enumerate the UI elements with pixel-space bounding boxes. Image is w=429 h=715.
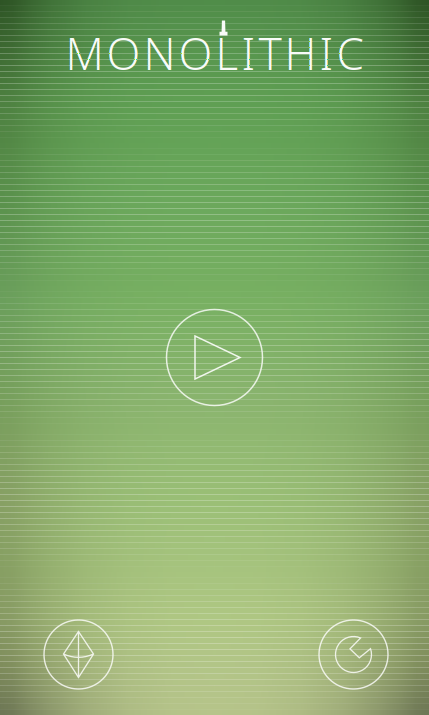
button[interactable]: Play [166,309,262,405]
button[interactable]: Crystal [44,620,113,689]
staticText: MONOLITHIC [65,24,363,82]
button[interactable]: Timer [319,620,388,689]
